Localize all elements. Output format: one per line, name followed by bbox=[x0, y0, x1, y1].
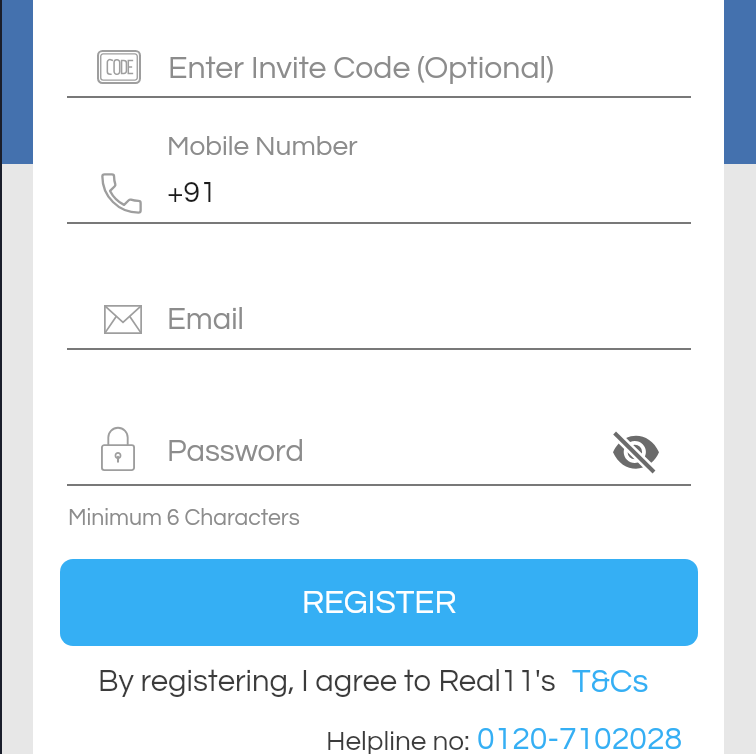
staticText: T&Cs bbox=[572, 665, 649, 699]
button[interactable]: Email bbox=[167, 304, 244, 336]
button[interactable]: Enter Invite Code (Optional) bbox=[168, 52, 554, 85]
staticText: 0120-7102028 bbox=[477, 723, 683, 754]
button[interactable]: REGISTER bbox=[60, 559, 698, 646]
staticText: By registering, I agree to Real11's bbox=[98, 666, 556, 698]
button[interactable]: T&Cs bbox=[568, 660, 654, 700]
staticText: Minimum 6 Characters bbox=[68, 506, 300, 530]
button[interactable]: 0120-7102028 bbox=[474, 720, 682, 754]
button[interactable]: Password bbox=[167, 436, 304, 468]
staticText: REGISTER bbox=[302, 586, 457, 620]
staticText: Mobile Number bbox=[167, 132, 358, 161]
button[interactable]: +91 bbox=[167, 177, 217, 208]
button[interactable]: Show password bbox=[604, 424, 668, 480]
staticText: Helpline no: bbox=[326, 727, 470, 754]
